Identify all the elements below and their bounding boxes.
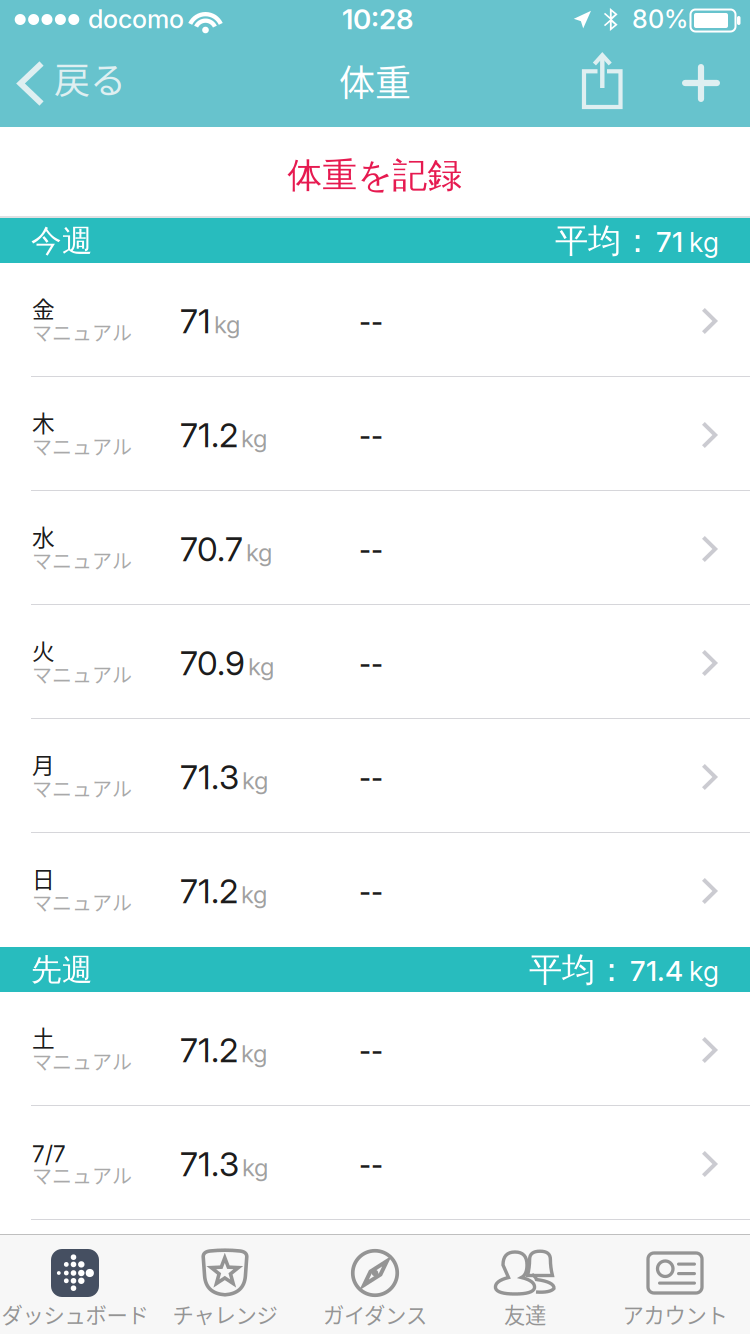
button[interactable]: アカウント bbox=[600, 1235, 750, 1334]
staticText: kg bbox=[246, 538, 272, 567]
staticText: kg bbox=[689, 955, 719, 988]
staticText: ガイダンス bbox=[323, 1299, 427, 1329]
button[interactable]: 月 bbox=[0, 719, 750, 833]
staticText: 10:28 bbox=[342, 2, 414, 36]
staticText: kg bbox=[248, 652, 274, 681]
staticText: kg bbox=[214, 310, 240, 339]
staticText: -- bbox=[359, 648, 383, 680]
staticText: 71 bbox=[180, 301, 211, 341]
staticText: kg bbox=[241, 1039, 267, 1068]
staticText: 今週 bbox=[31, 222, 93, 260]
button[interactable]: ダッシュボード bbox=[0, 1235, 150, 1334]
staticText: 土 bbox=[32, 1021, 55, 1053]
button[interactable]: 友達 bbox=[450, 1235, 600, 1334]
staticText: kg bbox=[242, 766, 268, 795]
button[interactable]: 水 bbox=[0, 491, 750, 605]
button[interactable]: Add bbox=[660, 40, 742, 127]
button[interactable]: 火 bbox=[0, 605, 750, 719]
staticText: マニュアル bbox=[32, 431, 132, 460]
staticText: 火 bbox=[32, 634, 55, 666]
staticText: 71.2 bbox=[180, 1030, 238, 1070]
staticText: 71.3 bbox=[180, 1144, 239, 1184]
staticText: 70.7 bbox=[180, 529, 243, 569]
button[interactable]: Share bbox=[562, 40, 642, 127]
staticText: 71.3 bbox=[180, 757, 239, 797]
staticText: 木 bbox=[32, 406, 55, 438]
staticText: 先週 bbox=[31, 951, 93, 989]
staticText: 金 bbox=[32, 292, 55, 324]
staticText: 体重 bbox=[339, 54, 411, 106]
staticText: 70.9 bbox=[180, 643, 245, 683]
staticText: アカウント bbox=[622, 1299, 727, 1329]
staticText: 71.4 bbox=[630, 954, 683, 988]
staticText: 平均 bbox=[555, 220, 621, 262]
staticText: docomo bbox=[88, 4, 184, 34]
staticText: 7/7 bbox=[32, 1140, 66, 1168]
button[interactable]: 木 bbox=[0, 377, 750, 491]
staticText: -- bbox=[359, 1149, 383, 1181]
staticText: マニュアル bbox=[32, 659, 132, 688]
button[interactable]: ガイダンス bbox=[300, 1235, 450, 1334]
staticText: 日 bbox=[32, 862, 55, 894]
button[interactable]: 体重を記録 bbox=[0, 127, 750, 216]
button[interactable]: 金 bbox=[0, 263, 750, 377]
button[interactable]: チャレンジ bbox=[150, 1235, 300, 1334]
button[interactable]: 7/7 bbox=[0, 1106, 750, 1220]
staticText: kg bbox=[242, 1153, 268, 1182]
staticText: -- bbox=[359, 306, 383, 338]
staticText: マニュアル bbox=[32, 887, 132, 916]
staticText: チャレンジ bbox=[172, 1299, 277, 1329]
staticText: マニュアル bbox=[32, 317, 132, 346]
staticText: 平均 bbox=[529, 949, 595, 991]
staticText: 71.2 bbox=[180, 871, 238, 911]
button[interactable]: 土 bbox=[0, 992, 750, 1106]
staticText: 71.2 bbox=[180, 415, 238, 455]
staticText: kg bbox=[241, 424, 267, 453]
staticText: 友達 bbox=[504, 1299, 546, 1329]
staticText: マニュアル bbox=[32, 1046, 132, 1075]
staticText: -- bbox=[359, 1035, 383, 1067]
staticText: 水 bbox=[32, 520, 55, 552]
staticText: 71 bbox=[656, 225, 683, 259]
staticText: マニュアル bbox=[32, 545, 132, 574]
staticText: kg bbox=[689, 226, 719, 259]
staticText: 戻る bbox=[54, 52, 126, 104]
staticText: -- bbox=[359, 762, 383, 794]
staticText: ： bbox=[595, 949, 628, 991]
button[interactable]: 日 bbox=[0, 833, 750, 947]
staticText: ： bbox=[621, 220, 654, 262]
staticText: 80% bbox=[632, 4, 688, 34]
staticText: -- bbox=[359, 420, 383, 452]
staticText: 月 bbox=[32, 748, 55, 780]
staticText: -- bbox=[359, 534, 383, 566]
button[interactable]: 戻る bbox=[0, 40, 145, 127]
staticText: マニュアル bbox=[32, 1160, 132, 1189]
staticText: マニュアル bbox=[32, 773, 132, 802]
staticText: 体重を記録 bbox=[287, 154, 462, 197]
staticText: kg bbox=[241, 880, 267, 909]
staticText: ダッシュボード bbox=[1, 1299, 148, 1329]
staticText: -- bbox=[359, 876, 383, 908]
